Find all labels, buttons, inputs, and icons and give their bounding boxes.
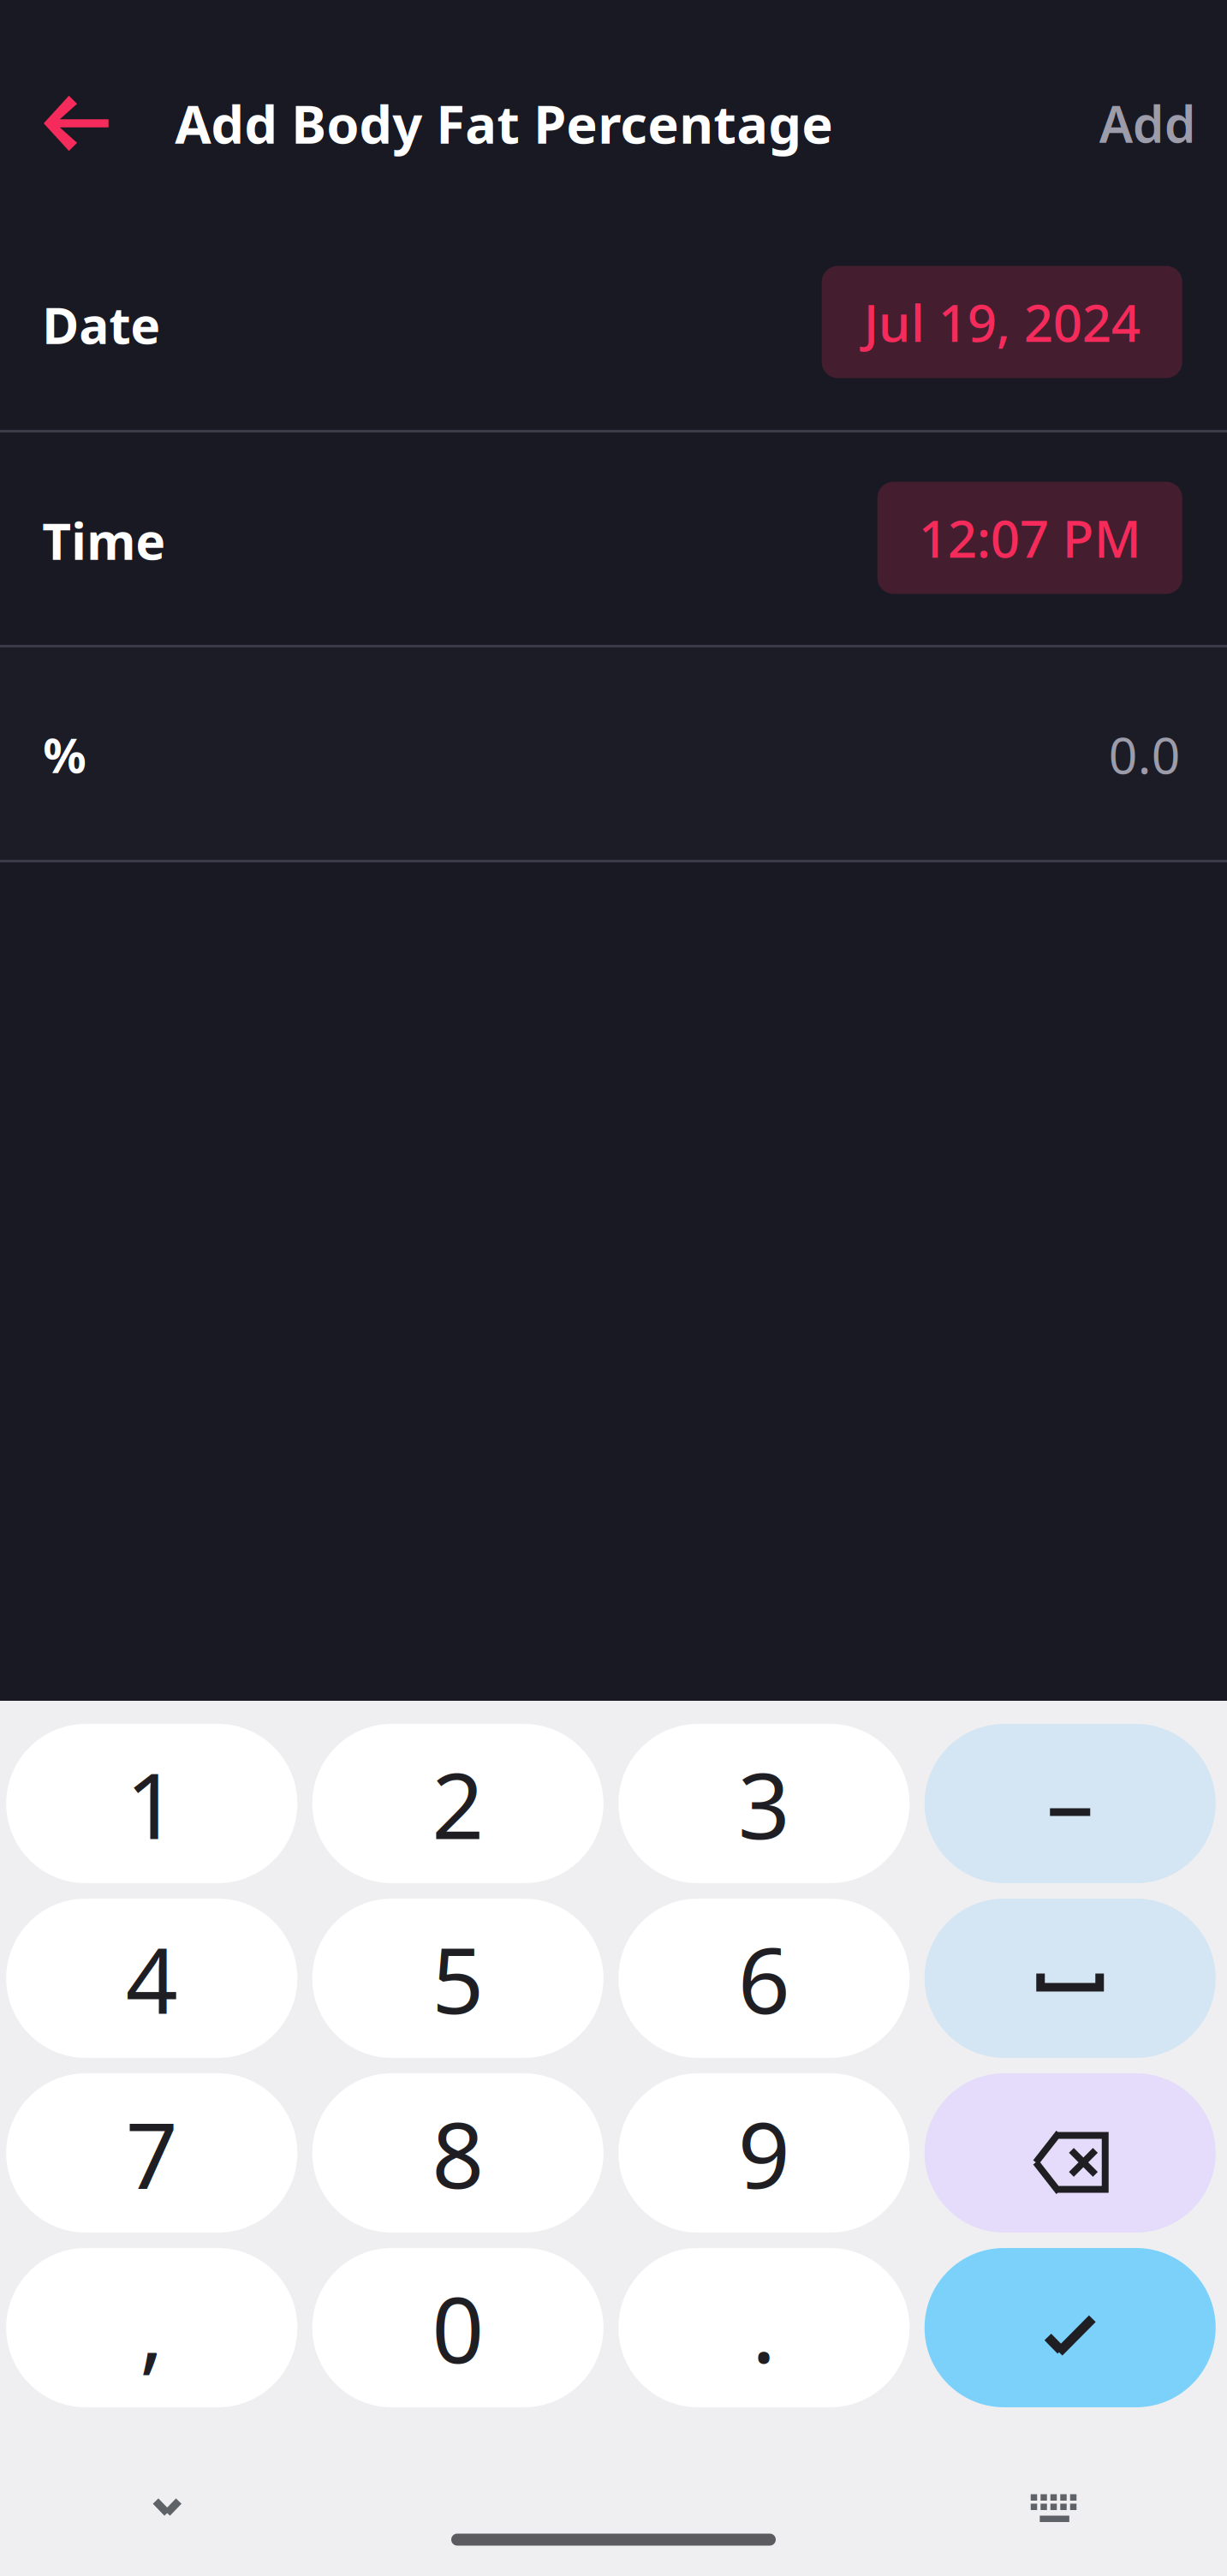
button[interactable]: 3: [618, 1724, 910, 1883]
button[interactable]: ,: [6, 2248, 297, 2407]
staticText: Time: [42, 507, 165, 574]
button[interactable]: 2: [312, 1724, 603, 1883]
staticText: 1: [126, 1743, 178, 1864]
button[interactable]: 4: [6, 1899, 297, 2058]
button[interactable]: 9: [618, 2073, 910, 2233]
button[interactable]: 6: [618, 1899, 910, 2058]
button[interactable]: Change keyboard: [998, 2484, 1110, 2530]
staticText: 0: [432, 2267, 484, 2388]
button[interactable]: Hide keyboard: [111, 2484, 223, 2530]
staticText: 9: [738, 2092, 790, 2214]
staticText: 6: [738, 1918, 790, 2039]
button[interactable]: Add: [1082, 69, 1213, 178]
staticText: 2: [432, 1743, 484, 1864]
staticText: 7: [126, 2092, 178, 2214]
button[interactable]: Done: [925, 2248, 1216, 2407]
staticText: 3: [738, 1743, 790, 1864]
staticText: %: [43, 723, 87, 786]
staticText: 8: [432, 2092, 484, 2214]
button[interactable]: Jul 19, 2024: [822, 266, 1182, 378]
staticText: Add Body Fat Percentage: [175, 88, 833, 158]
button[interactable]: Backspace: [925, 2073, 1216, 2233]
button[interactable]: 1: [6, 1724, 297, 1883]
button[interactable]: Space: [925, 1899, 1216, 2058]
button[interactable]: 8: [312, 2073, 603, 2233]
staticText: Add: [1099, 90, 1196, 157]
staticText: 5: [432, 1918, 484, 2039]
button[interactable]: 0: [312, 2248, 603, 2407]
staticText: ,: [139, 2267, 164, 2388]
button[interactable]: Minus: [925, 1724, 1216, 1883]
button[interactable]: Back: [21, 69, 130, 178]
button[interactable]: 12:07 PM: [877, 482, 1182, 594]
staticText: Jul 19, 2024: [864, 288, 1140, 356]
staticText: Date: [42, 291, 160, 358]
staticText: 4: [126, 1918, 178, 2039]
staticText: 0.0: [1109, 721, 1181, 788]
button[interactable]: 7: [6, 2073, 297, 2233]
staticText: 12:07 PM: [919, 504, 1141, 572]
button[interactable]: .: [618, 2248, 910, 2407]
staticText: .: [752, 2267, 776, 2388]
button[interactable]: 5: [312, 1899, 603, 2058]
